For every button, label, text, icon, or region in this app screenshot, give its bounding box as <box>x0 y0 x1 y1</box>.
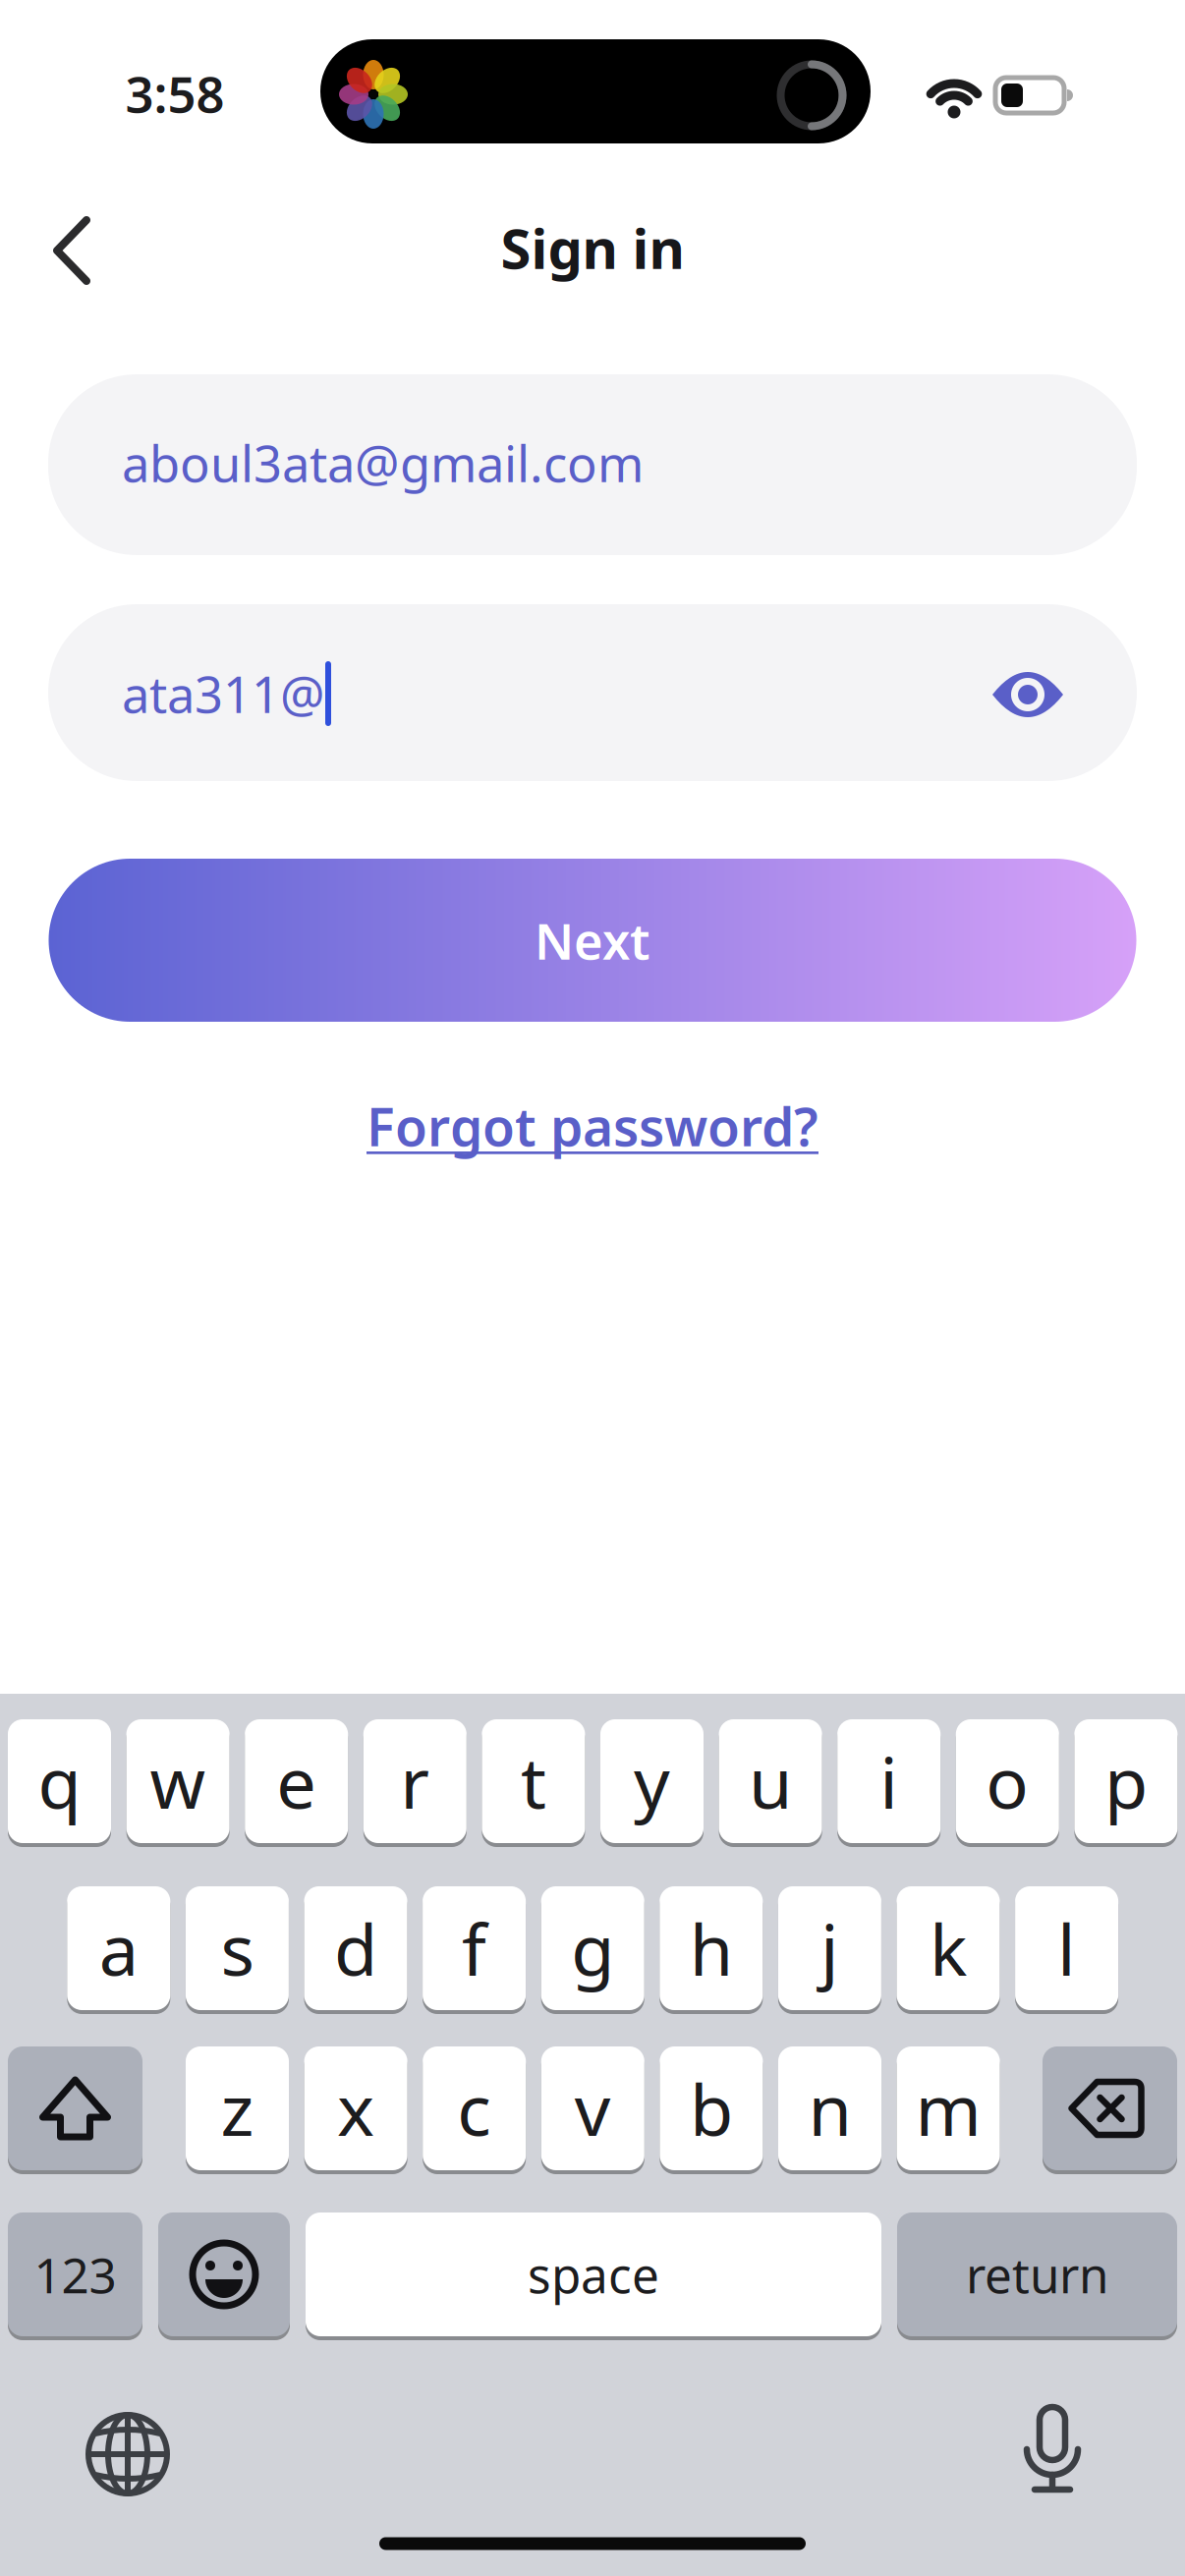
button[interactable]: i <box>837 1719 941 1847</box>
button[interactable]: t <box>482 1719 585 1847</box>
button[interactable]: return <box>897 2212 1177 2340</box>
button[interactable]: w <box>126 1719 230 1847</box>
staticText: a <box>99 1901 138 1995</box>
button[interactable]: Forgot password? <box>367 1091 818 1161</box>
staticText: Sign in <box>501 211 684 284</box>
button[interactable]: e <box>245 1719 348 1847</box>
button[interactable]: s <box>186 1886 289 2014</box>
button[interactable]: k <box>897 1886 1000 2014</box>
button[interactable]: Dictate <box>998 2400 1106 2508</box>
button[interactable]: d <box>304 1886 407 2014</box>
staticText: k <box>930 1901 967 1995</box>
staticText: q <box>38 1734 81 1828</box>
button[interactable]: p <box>1074 1719 1178 1847</box>
staticText: i <box>880 1734 898 1828</box>
staticText: d <box>334 1901 377 1995</box>
button[interactable]: m <box>897 2046 1000 2174</box>
button[interactable]: h <box>660 1886 763 2014</box>
button[interactable]: Back <box>18 196 126 305</box>
staticText: j <box>820 1901 839 1995</box>
staticText: w <box>150 1734 206 1828</box>
staticText: aboul3ata@gmail.com <box>122 430 644 496</box>
staticText: 123 <box>34 2242 116 2307</box>
button[interactable]: Email <box>48 374 1137 555</box>
button[interactable]: c <box>423 2046 526 2174</box>
button[interactable]: Password <box>48 604 1137 781</box>
staticText: o <box>986 1734 1029 1828</box>
staticText: r <box>400 1734 430 1828</box>
button[interactable]: b <box>660 2046 763 2174</box>
staticText: e <box>276 1734 317 1828</box>
staticText: ata311@ <box>122 661 325 727</box>
staticText: Next <box>535 907 650 973</box>
staticText: h <box>690 1901 733 1995</box>
button[interactable]: z <box>186 2046 289 2174</box>
staticText: return <box>966 2242 1108 2307</box>
button[interactable]: Shift <box>8 2046 142 2174</box>
staticText: b <box>690 2061 733 2155</box>
button[interactable]: x <box>304 2046 407 2174</box>
staticText: g <box>571 1901 614 1995</box>
staticText: 3:58 <box>125 60 225 126</box>
button[interactable]: n <box>778 2046 881 2174</box>
button[interactable]: g <box>541 1886 644 2014</box>
button[interactable]: Delete <box>1043 2046 1177 2174</box>
staticText: c <box>457 2061 491 2155</box>
button[interactable]: Emoji <box>158 2212 290 2340</box>
staticText: p <box>1104 1734 1148 1828</box>
button[interactable]: Next <box>49 859 1136 1022</box>
button[interactable]: o <box>956 1719 1059 1847</box>
staticText: n <box>808 2061 851 2155</box>
button[interactable]: 123 <box>8 2212 142 2340</box>
button[interactable]: f <box>423 1886 526 2014</box>
staticText: Forgot password? <box>367 1091 818 1161</box>
staticText: m <box>915 2061 981 2155</box>
button[interactable]: Next keyboard <box>74 2400 182 2508</box>
button[interactable]: v <box>541 2046 644 2174</box>
button[interactable]: l <box>1015 1886 1118 2014</box>
button[interactable]: q <box>8 1719 111 1847</box>
button[interactable]: space <box>306 2212 881 2340</box>
button[interactable]: Show password <box>974 641 1082 749</box>
staticText: t <box>521 1734 546 1828</box>
staticText: space <box>528 2242 659 2307</box>
staticText: y <box>634 1734 670 1828</box>
staticText: s <box>220 1901 254 1995</box>
button[interactable]: r <box>363 1719 467 1847</box>
button[interactable]: a <box>67 1886 170 2014</box>
staticText: v <box>575 2061 611 2155</box>
button[interactable]: y <box>600 1719 704 1847</box>
staticText: x <box>337 2061 374 2155</box>
staticText: f <box>462 1901 486 1995</box>
staticText: z <box>221 2061 254 2155</box>
staticText: u <box>749 1734 792 1828</box>
staticText: l <box>1057 1901 1076 1995</box>
button[interactable]: j <box>778 1886 881 2014</box>
button[interactable]: u <box>719 1719 822 1847</box>
